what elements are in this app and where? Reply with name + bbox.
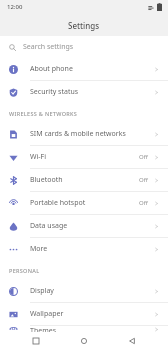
staticText: Themes bbox=[30, 326, 154, 332]
button[interactable]: Home bbox=[72, 332, 96, 350]
staticText: Off bbox=[139, 153, 148, 161]
staticText: Search settings bbox=[23, 42, 74, 52]
button[interactable]: More bbox=[0, 238, 168, 260]
button[interactable]: Security status bbox=[0, 81, 168, 103]
button[interactable]: SIM cards & mobile networks bbox=[0, 123, 168, 145]
staticText: Bluetooth bbox=[30, 175, 139, 185]
button[interactable]: About phone bbox=[0, 58, 168, 80]
staticText: Data usage bbox=[30, 221, 154, 231]
staticText: Wi-Fi bbox=[30, 152, 139, 162]
staticText: PERSONAL bbox=[9, 267, 40, 274]
staticText: Wallpaper bbox=[30, 309, 154, 319]
button[interactable]: Search settings bbox=[0, 36, 168, 58]
staticText: WIRELESS & NETWORKS bbox=[9, 110, 78, 117]
staticText: About phone bbox=[30, 64, 154, 74]
staticText: Off bbox=[139, 199, 148, 207]
button[interactable]: Recent apps bbox=[24, 332, 48, 350]
button[interactable]: Data usage bbox=[0, 215, 168, 237]
button[interactable]: Themes bbox=[0, 326, 168, 332]
staticText: Portable hotspot bbox=[30, 198, 139, 208]
staticText: SIM cards & mobile networks bbox=[30, 129, 154, 139]
staticText: Security status bbox=[30, 87, 154, 97]
staticText: More bbox=[30, 244, 154, 254]
staticText: Off bbox=[139, 176, 148, 184]
staticText: 12:00 bbox=[7, 3, 23, 11]
staticText: Settings bbox=[68, 20, 100, 31]
button[interactable]: Portable hotspot bbox=[0, 192, 168, 214]
button[interactable]: Wi-Fi bbox=[0, 146, 168, 168]
button[interactable]: Wallpaper bbox=[0, 303, 168, 325]
staticText: Display bbox=[30, 286, 154, 296]
button[interactable]: Back bbox=[120, 332, 144, 350]
button[interactable]: Display bbox=[0, 280, 168, 302]
button[interactable]: Bluetooth bbox=[0, 169, 168, 191]
